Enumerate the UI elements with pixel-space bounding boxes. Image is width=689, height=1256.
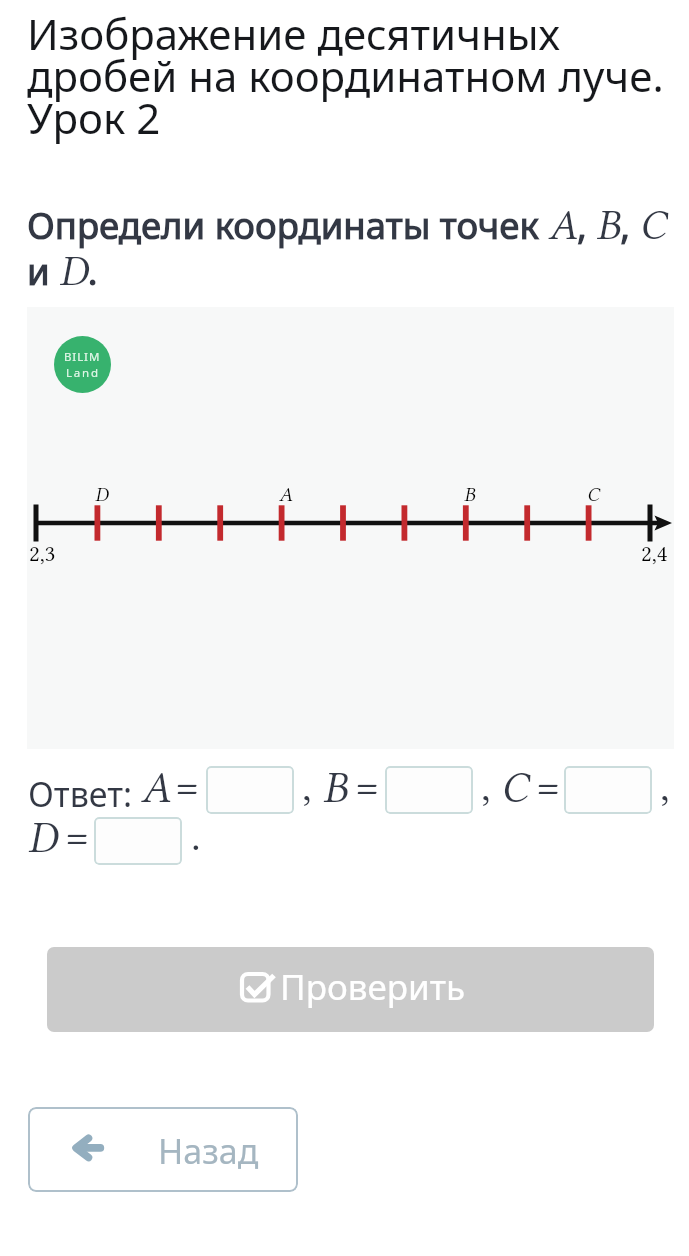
staticText: A <box>141 763 171 813</box>
button[interactable]: Answer input <box>385 766 473 814</box>
staticText: Ответ: <box>28 771 133 817</box>
staticText: C <box>501 763 529 813</box>
staticText: Изображение десятичных дробей на координ… <box>27 5 672 146</box>
staticText: 2,4 <box>641 540 668 566</box>
staticText: D <box>28 813 58 863</box>
staticText: = <box>355 761 380 811</box>
staticText: Проверить <box>280 963 466 1011</box>
staticText: , <box>481 761 491 811</box>
staticText: BILIM <box>64 349 101 365</box>
staticText: Land <box>66 365 100 381</box>
other: Back <box>68 1128 108 1168</box>
staticText: B <box>323 763 348 813</box>
staticText: C <box>587 483 600 506</box>
staticText: = <box>65 811 90 861</box>
staticText: = <box>175 761 200 811</box>
button[interactable]: Проверить <box>47 947 654 1032</box>
staticText: Назад <box>158 1128 259 1174</box>
staticText: . <box>191 811 201 861</box>
staticText: A <box>279 483 293 506</box>
staticText: B <box>464 483 476 506</box>
staticText: = <box>536 761 561 811</box>
button[interactable]: Answer input <box>564 766 652 814</box>
button[interactable]: Answer input <box>94 817 182 865</box>
staticText: , <box>302 761 312 811</box>
staticText: 2,3 <box>29 540 56 566</box>
staticText: , <box>660 761 670 811</box>
staticText: D <box>95 483 109 506</box>
button[interactable]: Answer input <box>206 766 294 814</box>
staticText: Определи координаты точек A, B, C и D. <box>27 203 685 295</box>
button[interactable]: Back <box>28 1107 298 1192</box>
